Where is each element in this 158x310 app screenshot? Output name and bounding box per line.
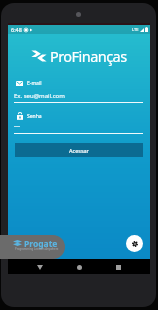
staticText: Acessar bbox=[69, 147, 89, 154]
staticText: E-mail bbox=[27, 80, 42, 87]
staticText: Progate bbox=[24, 238, 58, 250]
button[interactable]: Settings bbox=[126, 235, 143, 252]
staticText: LTE bbox=[132, 27, 139, 32]
staticText: Programming Lessons Anywhere bbox=[15, 247, 59, 251]
staticText: 6:48 bbox=[11, 26, 22, 33]
staticText: Senha bbox=[27, 113, 42, 120]
button[interactable]: Senha bbox=[17, 112, 42, 120]
staticText: Ex. seu@mail.com bbox=[14, 92, 65, 100]
staticText: ProFinanças bbox=[50, 46, 127, 66]
button[interactable]: E-mail bbox=[16, 80, 42, 87]
button[interactable]: Home bbox=[72, 260, 86, 274]
button[interactable]: Back bbox=[33, 260, 47, 274]
button[interactable]: Recent apps bbox=[111, 260, 125, 274]
button[interactable]: Acessar bbox=[15, 143, 143, 157]
